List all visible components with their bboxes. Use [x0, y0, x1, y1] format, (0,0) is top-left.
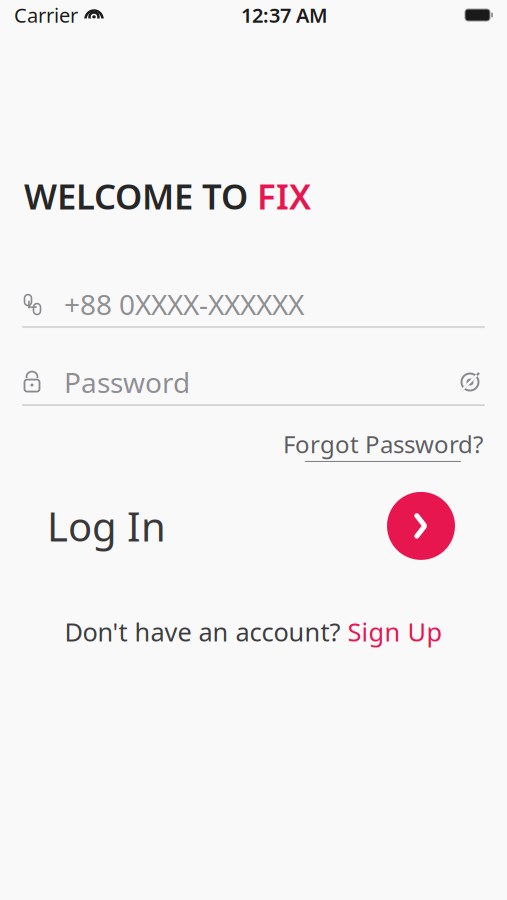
- staticText: 12:37 AM: [241, 2, 328, 28]
- staticText: Password: [64, 363, 190, 401]
- button[interactable]: Log In: [387, 492, 455, 560]
- staticText: Don't have an account?: [64, 615, 347, 648]
- staticText: FIX: [257, 173, 311, 219]
- staticText: Sign Up: [347, 615, 442, 648]
- button[interactable]: Don't have an account?: [64, 615, 442, 648]
- staticText: +88 0XXXX-XXXXXX: [64, 285, 304, 323]
- staticText: Forgot Password?: [283, 428, 483, 460]
- staticText: Log In: [47, 499, 166, 552]
- button[interactable]: Show password: [453, 365, 487, 399]
- staticText: WELCOME TO: [24, 173, 257, 219]
- staticText: Carrier: [14, 2, 78, 28]
- button[interactable]: Forgot Password?: [283, 428, 483, 462]
